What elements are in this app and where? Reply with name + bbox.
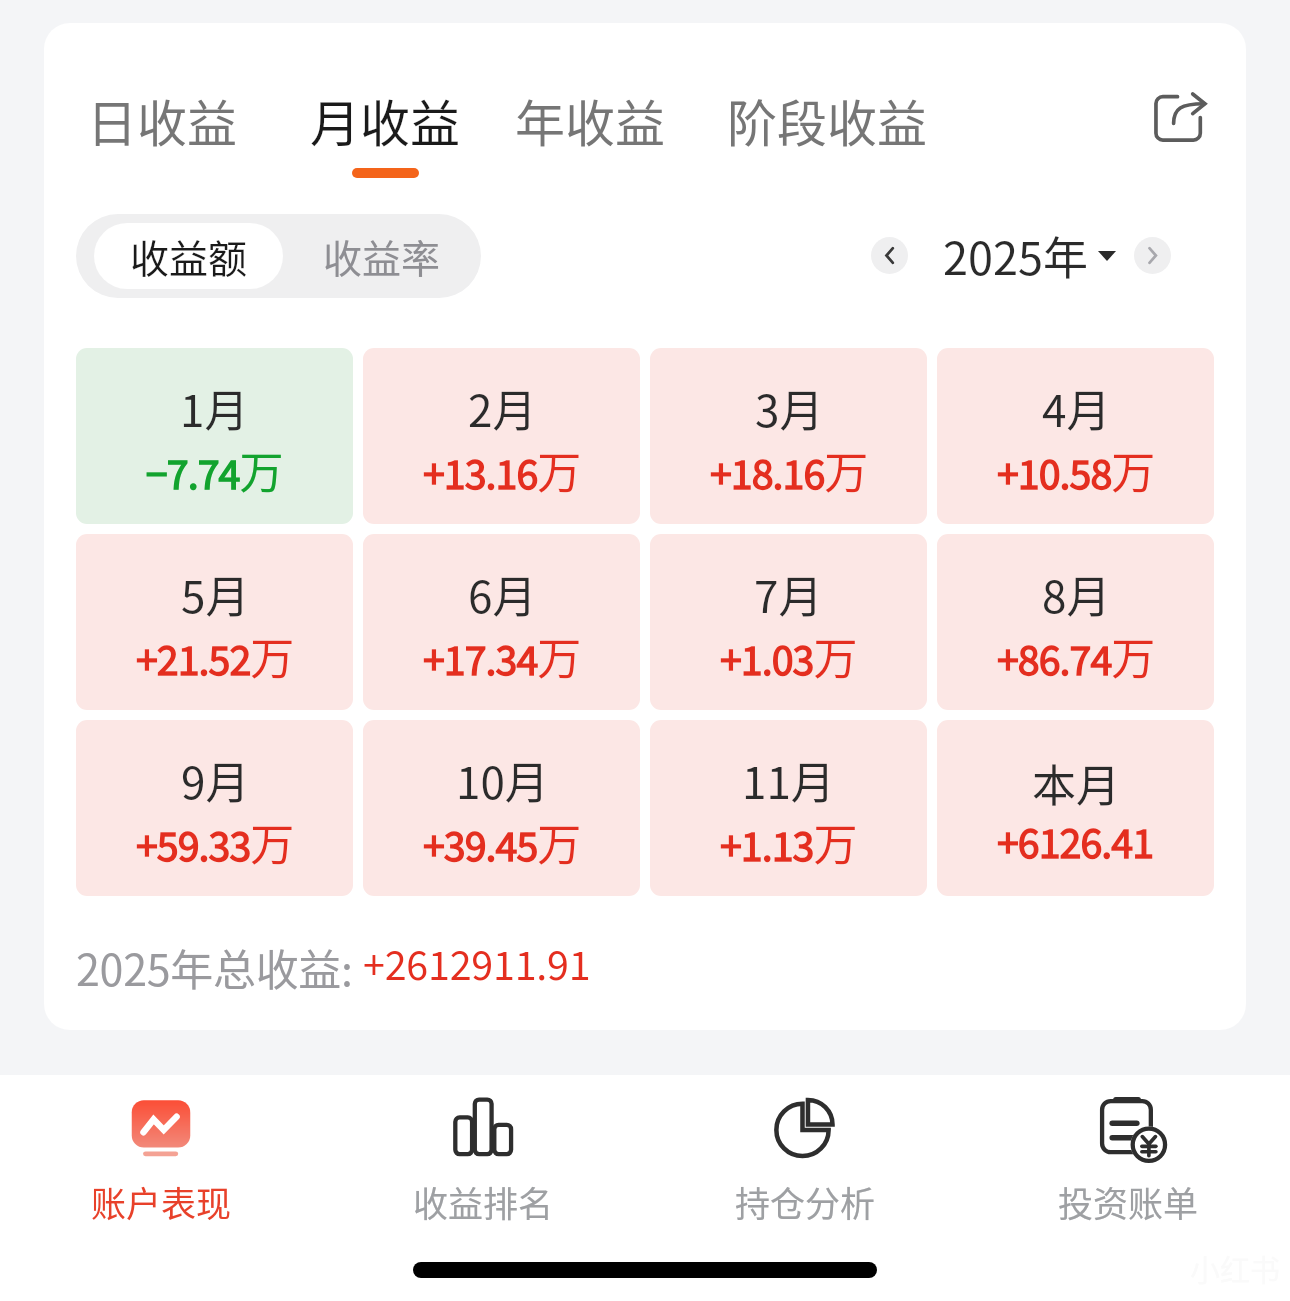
staticText: 11月	[742, 748, 835, 812]
button[interactable]: 年收益	[515, 84, 665, 178]
staticText: +18.16万	[710, 438, 868, 507]
staticText: 2月	[468, 376, 537, 440]
staticText: +59.33万	[136, 810, 294, 879]
button[interactable]: 收益排名	[322, 1089, 644, 1227]
staticText: 阶段收益	[727, 84, 927, 156]
staticText: +39.45万	[423, 810, 581, 879]
button[interactable]: 账户表现	[0, 1089, 322, 1227]
button[interactable]: 收益额	[94, 223, 283, 289]
staticText: +6126.41	[997, 813, 1154, 876]
button[interactable]: 2月	[363, 348, 640, 524]
staticText: +21.52万	[136, 624, 294, 693]
button[interactable]: 10月	[363, 720, 640, 896]
staticText: +17.34万	[423, 624, 581, 693]
staticText: 10月	[456, 748, 549, 812]
button[interactable]: 8月	[937, 534, 1214, 710]
button[interactable]: 月收益	[310, 84, 460, 178]
button[interactable]: 本月	[937, 720, 1214, 896]
button[interactable]: 1月	[76, 348, 353, 524]
staticText: 日收益	[87, 84, 237, 156]
staticText: 2025年总收益:	[76, 936, 363, 998]
staticText: 9月	[181, 748, 250, 812]
staticText: 3月	[755, 376, 824, 440]
button[interactable]: 日收益	[87, 84, 237, 178]
staticText: 本月	[1032, 751, 1120, 815]
button[interactable]: 5月	[76, 534, 353, 710]
button[interactable]: 6月	[363, 534, 640, 710]
staticText: +10.58万	[997, 438, 1155, 507]
staticText: 年收益	[515, 84, 665, 156]
button[interactable]: 2025年	[943, 223, 1116, 288]
button[interactable]: Share	[1130, 69, 1226, 165]
staticText: 4月	[1042, 376, 1111, 440]
staticText: 1月	[180, 376, 249, 440]
button[interactable]: 7月	[650, 534, 927, 710]
staticText: 收益率	[323, 228, 441, 284]
staticText: 收益额	[130, 228, 248, 284]
button[interactable]: 3月	[650, 348, 927, 524]
staticText: +86.74万	[997, 624, 1155, 693]
button[interactable]: 9月	[76, 720, 353, 896]
staticText: 账户表现	[91, 1176, 232, 1227]
button[interactable]: 阶段收益	[727, 84, 927, 178]
button[interactable]: 收益率	[283, 214, 481, 298]
button[interactable]: 投资账单	[967, 1089, 1290, 1227]
button[interactable]: Next year	[1134, 237, 1171, 274]
staticText: 投资账单	[1058, 1176, 1199, 1227]
staticText: 收益排名	[413, 1176, 554, 1227]
staticText: −7.74万	[146, 438, 283, 507]
button[interactable]: 11月	[650, 720, 927, 896]
staticText: 持仓分析	[735, 1176, 876, 1227]
staticText: 5月	[181, 562, 250, 626]
staticText: 7月	[754, 562, 823, 626]
staticText: 月收益	[310, 84, 460, 156]
staticText: 2025年	[943, 223, 1088, 288]
staticText: +1.03万	[720, 624, 857, 693]
button[interactable]: Previous year	[871, 237, 908, 274]
staticText: +13.16万	[423, 438, 581, 507]
button[interactable]: 持仓分析	[644, 1089, 967, 1227]
staticText: 8月	[1042, 562, 1111, 626]
button[interactable]: 4月	[937, 348, 1214, 524]
staticText: +2612911.91	[363, 935, 591, 998]
staticText: 6月	[468, 562, 537, 626]
staticText: +1.13万	[720, 810, 857, 879]
